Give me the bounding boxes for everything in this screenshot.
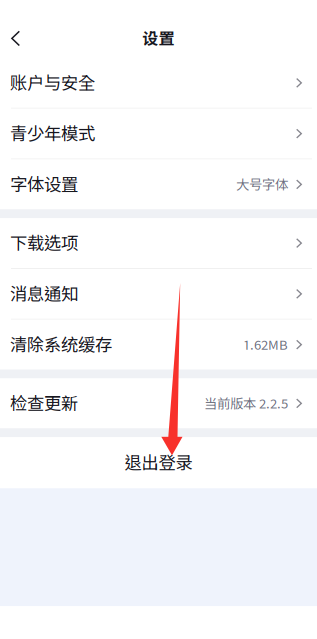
staticText: 大号字体 [236, 176, 288, 192]
button[interactable]: 清除系统缓存 [0, 320, 317, 370]
staticText: 1.62MB [243, 337, 288, 352]
button[interactable]: 字体设置 [0, 159, 317, 209]
staticText: 青少年模式 [10, 123, 95, 144]
button[interactable]: 青少年模式 [0, 109, 317, 159]
staticText: 消息通知 [10, 284, 78, 304]
staticText: 设置 [142, 29, 174, 48]
button[interactable]: 消息通知 [0, 269, 317, 319]
button[interactable]: 退出登录 [0, 437, 317, 488]
staticText: 清除系统缓存 [10, 334, 112, 355]
button[interactable]: Back [0, 16, 34, 60]
staticText: 退出登录 [124, 452, 192, 473]
staticText: 当前版本 2.2.5 [204, 395, 288, 411]
button[interactable]: 检查更新 [0, 378, 317, 428]
button[interactable]: 账户与安全 [0, 58, 317, 108]
staticText: 账户与安全 [10, 73, 95, 93]
staticText: 检查更新 [10, 393, 78, 414]
staticText: 字体设置 [10, 174, 78, 195]
button[interactable]: 下载选项 [0, 218, 317, 268]
staticText: 下载选项 [10, 233, 78, 253]
